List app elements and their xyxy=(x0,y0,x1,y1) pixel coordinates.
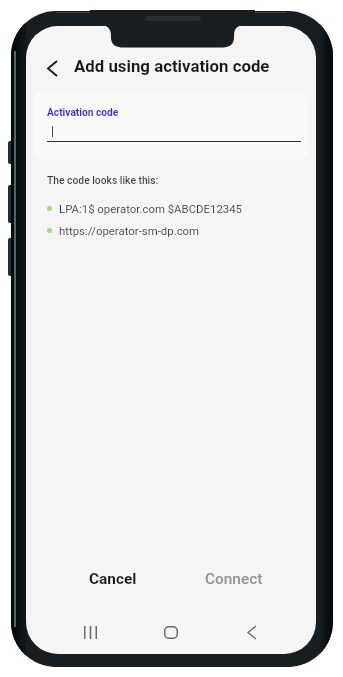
staticText: Cancel xyxy=(89,570,137,588)
button[interactable]: Home xyxy=(130,612,211,652)
staticText: Activation code xyxy=(47,107,119,119)
staticText: LPA:1$ operator.com $ABCDE12345 xyxy=(59,202,242,215)
button[interactable]: Cancel xyxy=(53,565,173,593)
button[interactable]: Recent apps xyxy=(50,612,130,652)
staticText: Add using activation code xyxy=(74,56,270,76)
staticText: The code looks like this: xyxy=(47,174,159,186)
button[interactable]: Back xyxy=(211,612,292,652)
button[interactable]: Connect xyxy=(173,565,294,593)
staticText: Connect xyxy=(205,570,263,588)
button[interactable]: Activation code xyxy=(34,91,308,160)
button[interactable]: Navigate back xyxy=(41,57,63,79)
staticText: https://operator-sm-dp.com xyxy=(59,224,200,237)
